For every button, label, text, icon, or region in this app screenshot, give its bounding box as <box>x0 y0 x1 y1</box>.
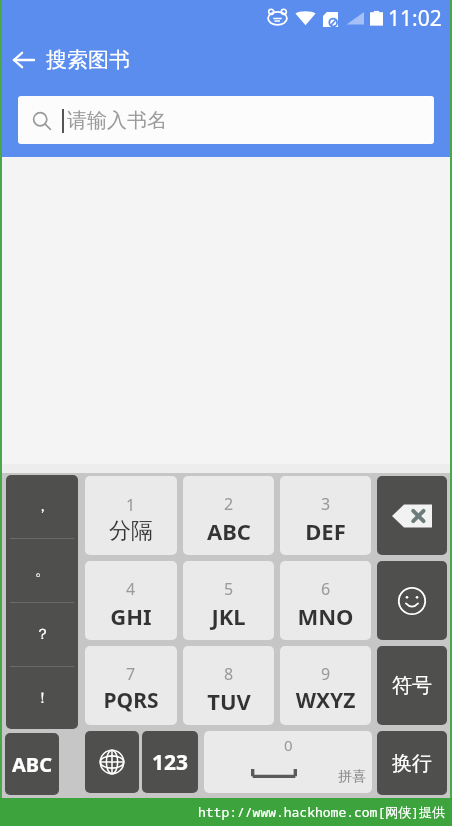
staticText: 5 <box>224 578 234 600</box>
staticText: 123 <box>152 748 189 777</box>
staticText: 8 <box>224 663 234 685</box>
staticText: 9 <box>321 663 331 685</box>
button[interactable]: Language <box>85 731 139 793</box>
staticText: 搜索图书 <box>46 47 130 73</box>
button[interactable]: 1 <box>85 476 177 555</box>
staticText: 换行 <box>392 751 432 776</box>
staticText: ABC <box>12 751 52 778</box>
staticText: http://www.hackhome.com[网侠]提供 <box>198 803 446 821</box>
button[interactable]: 3 <box>280 476 371 555</box>
button[interactable]: Backspace <box>377 476 447 555</box>
button[interactable]: 123 <box>142 731 198 793</box>
staticText: 。 <box>35 561 50 580</box>
staticText: WXYZ <box>286 686 365 715</box>
staticText: 0 <box>284 735 293 755</box>
button[interactable]: 9 <box>280 646 371 725</box>
button[interactable]: 换行 <box>377 731 447 795</box>
staticText: ， <box>35 497 50 516</box>
staticText: 11:02 <box>388 4 442 33</box>
staticText: 请输入书名 <box>67 108 167 133</box>
button[interactable]: 8 <box>183 646 274 725</box>
button[interactable]: 2 <box>183 476 274 555</box>
staticText: 分隔 <box>109 517 153 545</box>
staticText: ？ <box>35 625 50 644</box>
staticText: 2 <box>224 493 234 515</box>
button[interactable]: 6 <box>280 561 371 640</box>
staticText: TUV <box>207 686 251 716</box>
staticText: DEF <box>305 516 346 546</box>
staticText: 拼喜 <box>338 768 366 786</box>
button[interactable]: 。 <box>6 539 78 602</box>
button[interactable]: 请输入书名 <box>18 96 434 144</box>
staticText: 6 <box>321 578 331 600</box>
button[interactable]: Space <box>204 731 372 793</box>
button[interactable]: ABC <box>5 733 59 795</box>
staticText: GHI <box>110 601 152 631</box>
staticText: MNO <box>297 601 354 631</box>
staticText: 1 <box>126 494 136 516</box>
staticText: PQRS <box>91 686 171 715</box>
button[interactable]: Emoji <box>377 561 447 640</box>
button[interactable]: ？ <box>6 603 78 666</box>
button[interactable]: 4 <box>85 561 177 640</box>
button[interactable]: ， <box>6 475 78 538</box>
button[interactable]: ！ <box>6 667 78 729</box>
button[interactable]: 5 <box>183 561 274 640</box>
staticText: ！ <box>35 689 50 708</box>
button[interactable]: 符号 <box>377 646 447 725</box>
staticText: ABC <box>207 516 251 546</box>
staticText: 4 <box>126 578 136 600</box>
staticText: 7 <box>126 663 136 685</box>
staticText: JKL <box>211 601 246 631</box>
staticText: 3 <box>321 493 331 515</box>
staticText: 符号 <box>392 673 432 698</box>
button[interactable]: 7 <box>85 646 177 725</box>
button[interactable]: Back <box>2 38 46 82</box>
